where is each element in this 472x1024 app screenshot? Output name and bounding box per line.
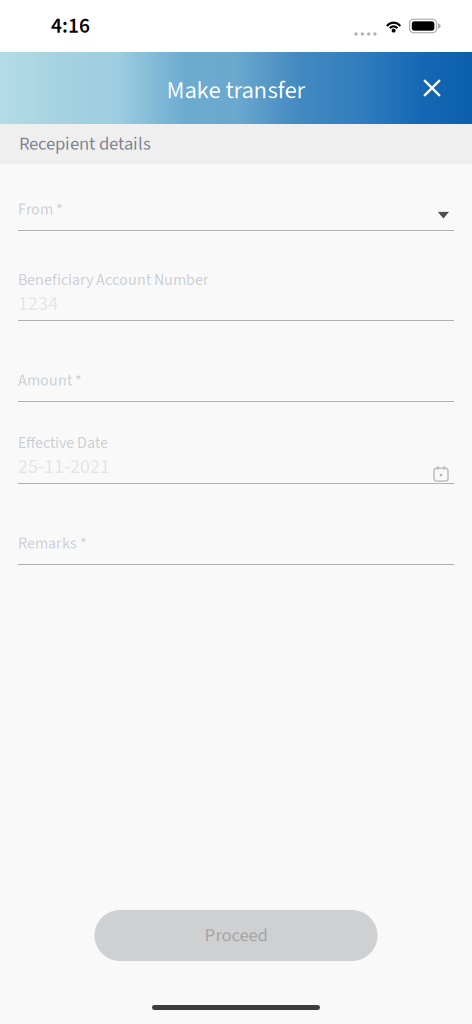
button[interactable]: Effective Date: [18, 402, 454, 484]
staticText: 4:16: [51, 11, 90, 41]
staticText: 1234: [18, 290, 58, 318]
button[interactable]: From *: [18, 164, 454, 231]
staticText: Amount *: [18, 369, 82, 392]
staticText: From *: [18, 198, 63, 221]
staticText: Recepient details: [19, 131, 151, 157]
staticText: Remarks *: [18, 532, 87, 555]
button[interactable]: Close: [408, 64, 456, 112]
staticText: Proceed: [204, 922, 267, 949]
staticText: Effective Date: [18, 432, 108, 454]
staticText: 25-11-2021: [18, 453, 110, 481]
staticText: Make transfer: [166, 73, 305, 108]
staticText: Beneficiary Account Number: [18, 269, 209, 291]
button[interactable]: Proceed: [94, 910, 377, 961]
